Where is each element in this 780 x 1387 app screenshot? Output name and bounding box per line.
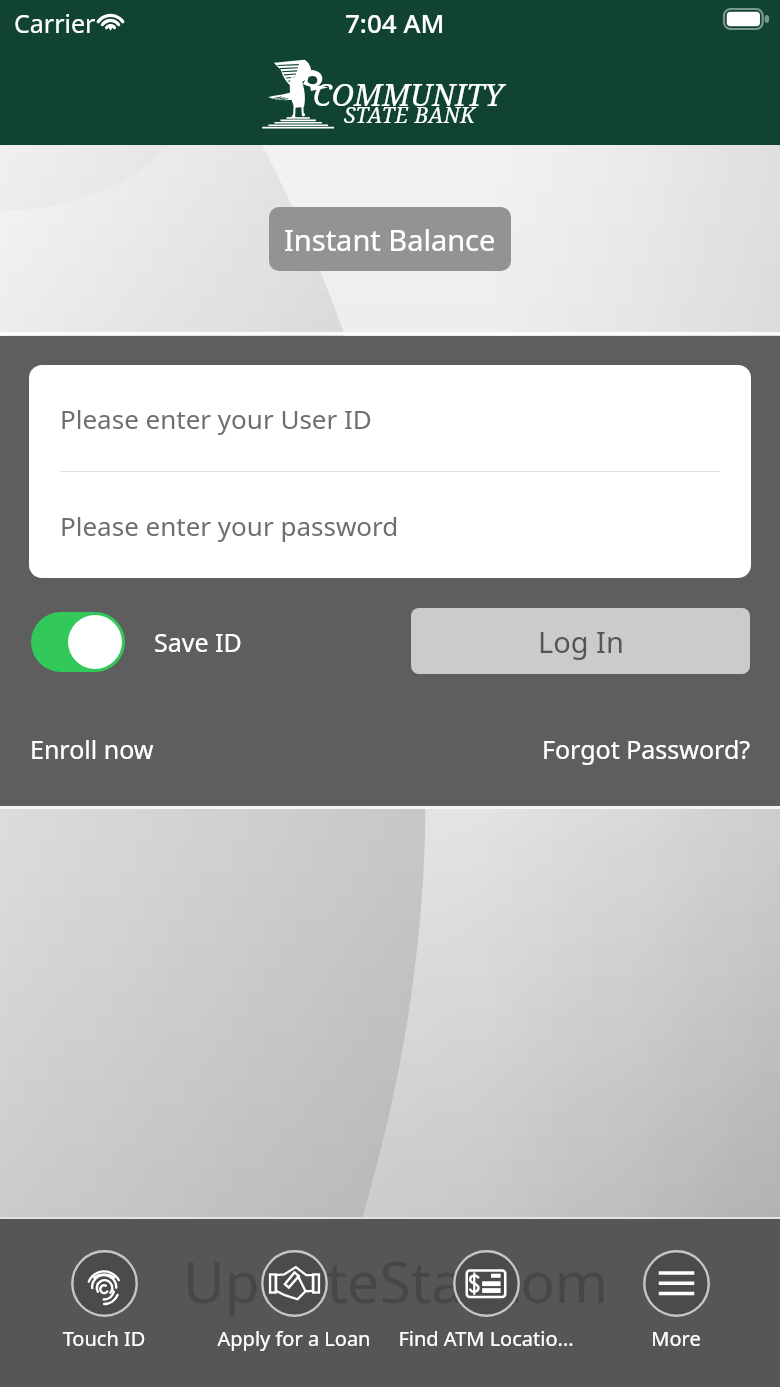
staticText: Touch ID xyxy=(9,1325,199,1352)
staticText: COMMUNITY xyxy=(313,74,504,115)
button[interactable]: Apply for a Loan xyxy=(199,1219,389,1387)
button[interactable]: Enroll now xyxy=(30,732,154,766)
staticText: Apply for a Loan xyxy=(199,1325,389,1352)
button[interactable]: Save ID xyxy=(31,611,242,673)
button[interactable]: Instant Balance xyxy=(269,207,511,271)
staticText: Please enter your User ID xyxy=(60,401,372,436)
button[interactable]: Log In xyxy=(411,608,750,674)
staticText: Carrier xyxy=(14,6,96,40)
button[interactable]: More xyxy=(581,1219,771,1387)
staticText: Save ID xyxy=(154,625,242,659)
button[interactable]: Please enter your password xyxy=(29,472,751,578)
staticText: Please enter your password xyxy=(60,508,399,543)
staticText: More xyxy=(581,1325,771,1352)
button[interactable]: Touch ID xyxy=(9,1219,199,1387)
staticText: Forgot Password? xyxy=(542,732,751,766)
staticText: STATE BANK xyxy=(344,101,476,130)
staticText: Instant Balance xyxy=(284,220,496,259)
button[interactable]: Please enter your User ID xyxy=(29,365,751,471)
button[interactable]: Find ATM Locations xyxy=(391,1219,581,1387)
staticText: UpdateStar.com xyxy=(183,1242,609,1320)
staticText: Find ATM Locatio... xyxy=(391,1325,581,1352)
staticText: 7:04 AM xyxy=(345,5,445,40)
button[interactable]: Forgot Password? xyxy=(542,732,751,766)
staticText: Log In xyxy=(538,622,624,661)
staticText: Enroll now xyxy=(30,732,154,766)
